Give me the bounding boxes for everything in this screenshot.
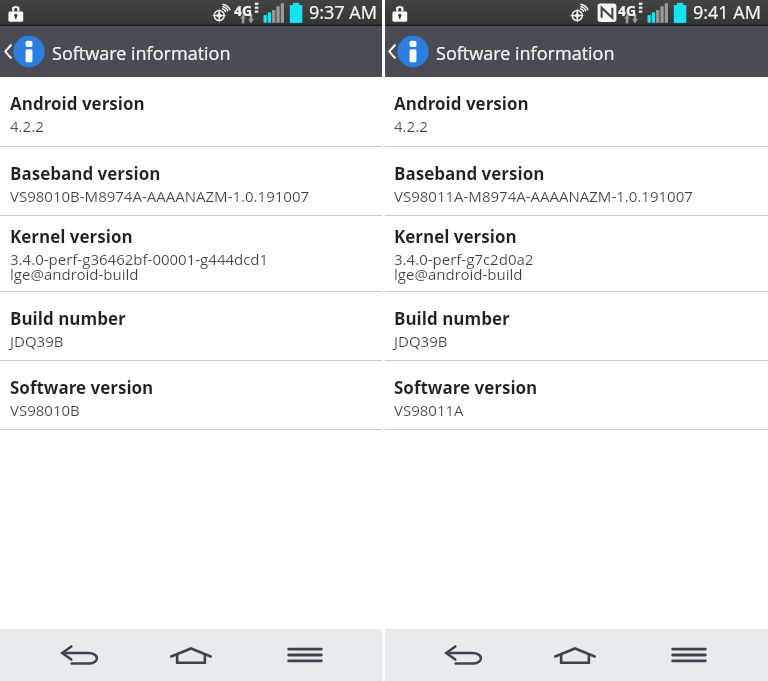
staticText: Software version: [10, 376, 154, 399]
staticText: Software version: [394, 376, 538, 399]
button[interactable]: Baseband version: [384, 147, 768, 215]
staticText: VS98010B: [10, 400, 80, 420]
button[interactable]: Back: [0, 26, 52, 77]
staticText: Android version: [10, 92, 145, 115]
staticText: Kernel version: [10, 225, 133, 248]
button[interactable]: Software version: [0, 361, 384, 429]
staticText: 3.4.0-perf-g36462bf-00001-g444dcd1: [10, 249, 269, 269]
staticText: VS98011A-M8974A-AAAANAZM-1.0.191007: [394, 186, 693, 206]
staticText: 9:37 AM: [309, 0, 377, 25]
staticText: 4G: [234, 1, 253, 20]
button[interactable]: Build number: [384, 292, 768, 360]
button[interactable]: Recent apps: [637, 629, 741, 681]
button[interactable]: Baseband version: [0, 147, 384, 215]
staticText: 9:41 AM: [693, 0, 761, 25]
button[interactable]: Android version: [0, 77, 384, 146]
staticText: 4G: [618, 1, 637, 20]
staticText: 4.2.2: [394, 116, 428, 136]
button[interactable]: Back: [27, 629, 131, 681]
button[interactable]: Software version: [384, 361, 768, 429]
staticText: Baseband version: [394, 162, 545, 185]
staticText: Software information: [436, 41, 615, 66]
button[interactable]: Back: [384, 26, 436, 77]
button[interactable]: Recent apps: [253, 629, 357, 681]
staticText: lge@android-build: [394, 264, 523, 284]
staticText: Build number: [10, 307, 126, 330]
button[interactable]: Build number: [0, 292, 384, 360]
staticText: VS98010B-M8974A-AAAANAZM-1.0.191007: [10, 186, 310, 206]
staticText: JDQ39B: [10, 331, 64, 351]
staticText: Software information: [52, 41, 231, 66]
button[interactable]: Back: [411, 629, 515, 681]
staticText: Baseband version: [10, 162, 161, 185]
staticText: lge@android-build: [10, 264, 139, 284]
staticText: Android version: [394, 92, 529, 115]
button[interactable]: Kernel version: [0, 216, 384, 291]
button[interactable]: Android version: [384, 77, 768, 146]
staticText: 4.2.2: [10, 116, 44, 136]
staticText: JDQ39B: [394, 331, 448, 351]
staticText: 3.4.0-perf-g7c2d0a2: [394, 249, 534, 269]
button[interactable]: Home: [523, 629, 627, 681]
button[interactable]: Kernel version: [384, 216, 768, 291]
staticText: VS98011A: [394, 400, 464, 420]
staticText: Kernel version: [394, 225, 517, 248]
button[interactable]: Home: [139, 629, 243, 681]
staticText: Build number: [394, 307, 510, 330]
